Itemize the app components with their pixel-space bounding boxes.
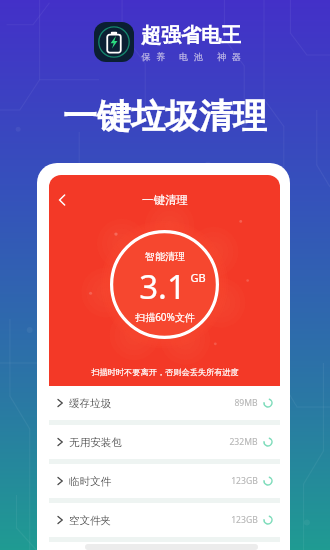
staticText: 无用安装包 <box>69 436 122 449</box>
button[interactable]: Back <box>50 188 74 212</box>
staticText: 3.1 <box>139 264 186 309</box>
staticText: GB <box>190 270 206 285</box>
button[interactable]: 临时文件 <box>49 464 280 498</box>
staticText: 89MB <box>234 397 258 409</box>
staticText: 123GB <box>231 514 258 526</box>
button[interactable]: 缓存垃圾 <box>49 386 280 420</box>
staticText: 超强省电王 <box>141 23 241 48</box>
button[interactable]: 无用安装包 <box>49 425 280 459</box>
staticText: 扫描60%文件 <box>135 310 195 324</box>
staticText: 临时文件 <box>69 475 111 488</box>
staticText: 智能清理 <box>145 250 185 263</box>
staticText: 空文件夹 <box>69 514 111 527</box>
staticText: 缓存垃圾 <box>69 397 111 410</box>
staticText: 123GB <box>231 475 258 487</box>
staticText: 232MB <box>229 436 258 448</box>
staticText: 保养 电池 神器 <box>141 50 247 62</box>
staticText: 一键垃圾清理 <box>63 95 267 138</box>
staticText: 扫描时时不要离开，否则会丢失所有进度 <box>91 367 239 377</box>
staticText: 一键清理 <box>142 193 188 207</box>
button[interactable]: 空文件夹 <box>49 503 280 537</box>
